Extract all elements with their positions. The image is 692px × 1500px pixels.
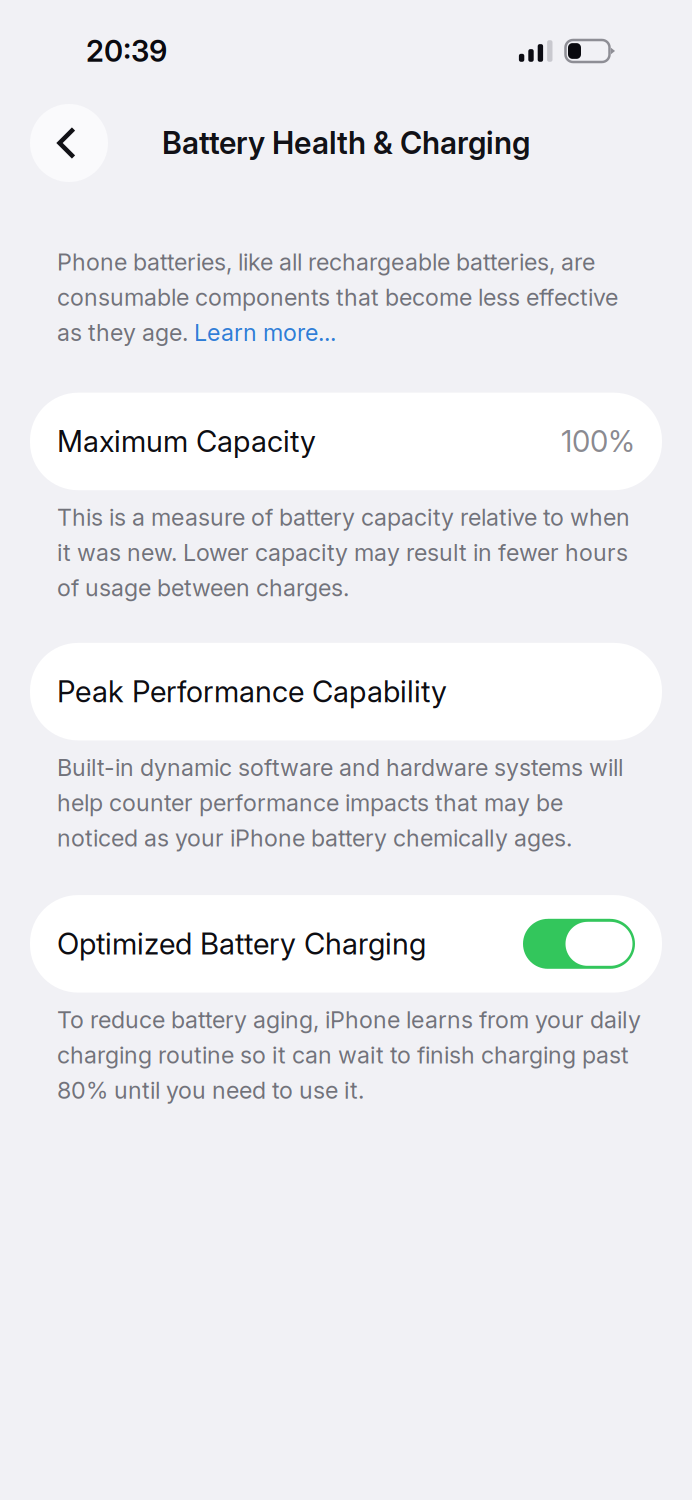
staticText: Peak Performance Capability [57,674,447,709]
staticText: To reduce battery aging, iPhone learns f… [57,1006,641,1104]
staticText: Phone batteries, like all rechargeable b… [57,248,618,347]
staticText: 20:39 [86,33,167,69]
staticText: Battery Health & Charging [162,125,530,161]
button[interactable]: Back [30,104,108,182]
staticText: Built-in dynamic software and hardware s… [57,753,623,852]
staticText: Maximum Capacity [57,424,316,459]
staticText: 100% [561,424,635,459]
button[interactable]: Peak Performance Capability [0,643,692,740]
staticText: Optimized Battery Charging [57,926,426,962]
staticText: This is a measure of battery capacity re… [57,503,630,602]
button[interactable]: Maximum Capacity [0,393,692,490]
button[interactable]: Optimized Battery Charging [0,895,692,993]
